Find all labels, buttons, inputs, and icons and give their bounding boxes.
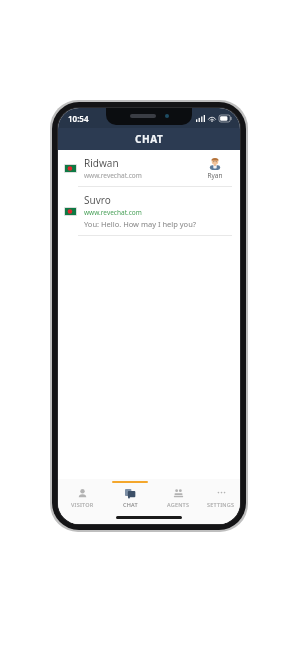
- staticText: You: Hello. How may I help you?: [84, 219, 197, 229]
- staticText: CHAT: [135, 132, 164, 146]
- staticText: AGENTS: [167, 501, 190, 508]
- staticText: Suvro: [84, 193, 111, 207]
- staticText: 10:54: [68, 113, 89, 124]
- button[interactable]: Settings: [202, 479, 240, 513]
- staticText: CHAT: [123, 501, 138, 508]
- button[interactable]: Visitor: [58, 479, 106, 513]
- staticText: www.revechat.com: [84, 208, 142, 217]
- other: Settings: [216, 488, 227, 499]
- staticText: www.revechat.com: [84, 171, 142, 180]
- button[interactable]: Chat: [106, 479, 154, 513]
- staticText: VISITOR: [71, 501, 94, 508]
- button[interactable]: Agents: [154, 479, 202, 513]
- staticText: Ridwan: [84, 156, 119, 170]
- button[interactable]: Suvro: [58, 187, 240, 235]
- other: Visitor: [77, 488, 88, 499]
- other: Chat: [125, 488, 136, 499]
- button[interactable]: Ridwan: [58, 150, 240, 186]
- other: Agents: [173, 488, 184, 499]
- staticText: SETTINGS: [207, 501, 235, 508]
- staticText: Ryan: [207, 171, 223, 180]
